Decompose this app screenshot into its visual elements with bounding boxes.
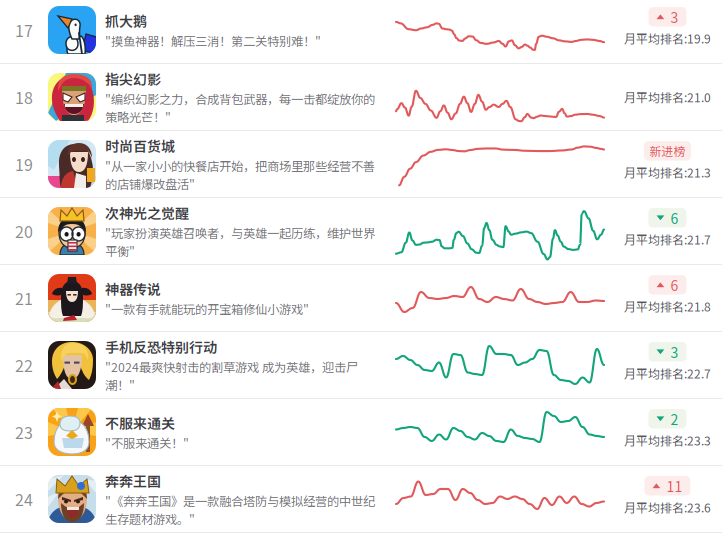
staticText: 23	[15, 420, 33, 444]
staticText: 指尖幻影	[105, 68, 161, 89]
staticText: 20	[15, 219, 33, 243]
button[interactable]: 23	[0, 399, 722, 465]
button[interactable]: 17	[0, 0, 722, 63]
staticText: 奔奔王国	[105, 470, 161, 491]
staticText: 17	[15, 18, 33, 42]
staticText: "编织幻影之力，合成背包武器，每一击都绽放你的策略光芒！"	[105, 90, 375, 125]
staticText: 月平均排名:21.0	[624, 88, 711, 106]
staticText: 新进榜	[649, 142, 685, 159]
staticText: 月平均排名:23.6	[624, 499, 711, 516]
button[interactable]: 20	[0, 198, 722, 264]
staticText: "摸鱼神器！解压三消！第二关特别难！"	[105, 32, 321, 50]
staticText: 月平均排名:21.3	[624, 164, 711, 181]
staticText: 月平均排名:19.9	[624, 30, 711, 47]
staticText: "一款有手就能玩的开宝箱修仙小游戏"	[105, 300, 309, 318]
staticText: 18	[15, 85, 33, 109]
staticText: 手机反恐特别行动	[105, 336, 217, 357]
button[interactable]: 19	[0, 131, 722, 197]
staticText: 次神光之觉醒	[105, 202, 189, 223]
staticText: 月平均排名:21.8	[624, 298, 711, 315]
staticText: 6	[670, 275, 678, 295]
staticText: 19	[15, 152, 33, 176]
staticText: 22	[15, 353, 33, 377]
staticText: 时尚百货城	[105, 135, 175, 156]
staticText: 3	[670, 7, 678, 27]
staticText: "《奔奔王国》是一款融合塔防与模拟经营的中世纪生存题材游戏。"	[105, 492, 375, 527]
button[interactable]: 18	[0, 64, 722, 130]
staticText: "玩家扮演英雄召唤者，与英雄一起历练，维护世界平衡"	[105, 224, 375, 259]
staticText: 月平均排名:22.7	[624, 365, 711, 382]
staticText: 抓大鹅	[105, 10, 147, 31]
staticText: 2	[670, 409, 678, 429]
staticText: 6	[670, 208, 678, 228]
staticText: 月平均排名:21.7	[624, 231, 711, 248]
staticText: 不服来通关	[105, 412, 175, 433]
button[interactable]: 22	[0, 332, 722, 398]
staticText: "不服来通关！"	[105, 434, 189, 452]
button[interactable]: 21	[0, 265, 722, 331]
staticText: 月平均排名:23.3	[624, 432, 711, 449]
staticText: 11	[666, 476, 682, 496]
staticText: 3	[670, 342, 678, 362]
staticText: "从一家小小的快餐店开始，把商场里那些经营不善的店铺爆改盘活"	[105, 157, 375, 192]
staticText: 神器传说	[105, 278, 161, 299]
staticText: 24	[15, 487, 33, 511]
button[interactable]: 24	[0, 466, 722, 532]
staticText: "2024最爽快射击的割草游戏 成为英雄，迎击尸潮！"	[105, 358, 358, 393]
staticText: 21	[15, 286, 33, 310]
